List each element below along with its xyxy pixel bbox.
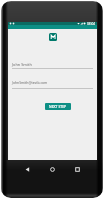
button[interactable]: NEXT STEP (45, 103, 71, 110)
staticText: 08:04 (87, 22, 96, 25)
button[interactable]: Home (46, 163, 58, 175)
button[interactable]: Back (21, 163, 33, 175)
staticText: JohnSmith@testb.com (12, 80, 48, 85)
button[interactable]: App logo (49, 33, 57, 41)
staticText: NEXT STEP (49, 104, 67, 109)
button[interactable]: Recents (71, 163, 83, 175)
staticText: John Smith (12, 62, 32, 67)
